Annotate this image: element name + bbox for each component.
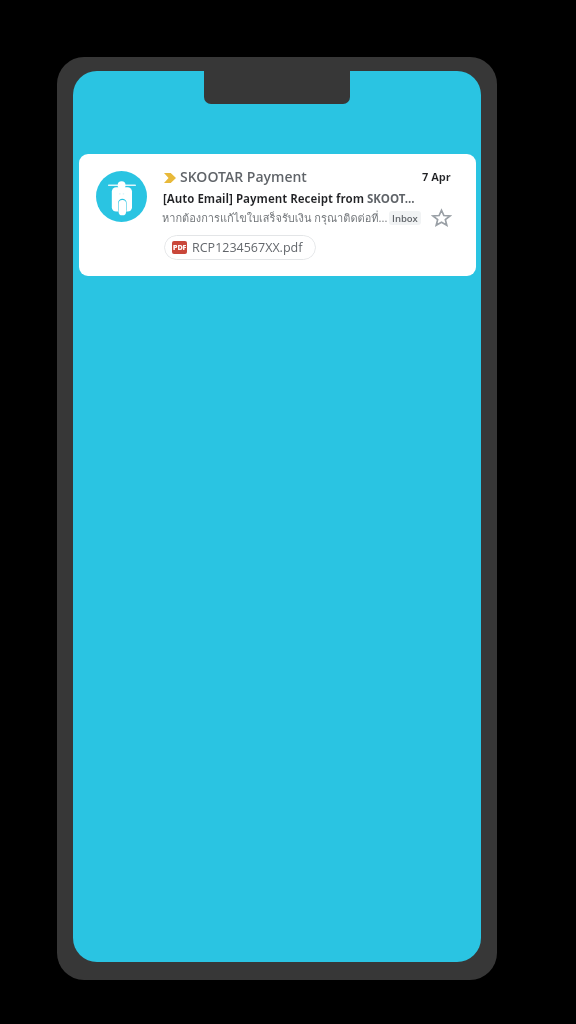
button[interactable]: Star — [431, 208, 451, 228]
button[interactable]: PDF — [164, 235, 316, 260]
button[interactable]: Inbox — [389, 211, 421, 225]
staticText: หากต้องการแก้ไขใบเสร็จรับเงิน กรุณาติดต่… — [162, 209, 388, 226]
staticText: 7 Apr — [422, 169, 451, 184]
staticText: SKOOTAR Payment — [180, 167, 307, 186]
staticText: SKOOT... — [367, 191, 415, 207]
staticText: [Auto Email] Payment Receipt from — [163, 191, 367, 207]
staticText: PDF — [173, 243, 187, 253]
staticText: RCP1234567XX.pdf — [192, 239, 303, 256]
button[interactable]: SKOOTAR Payment — [79, 154, 476, 276]
staticText: Inbox — [392, 212, 418, 225]
